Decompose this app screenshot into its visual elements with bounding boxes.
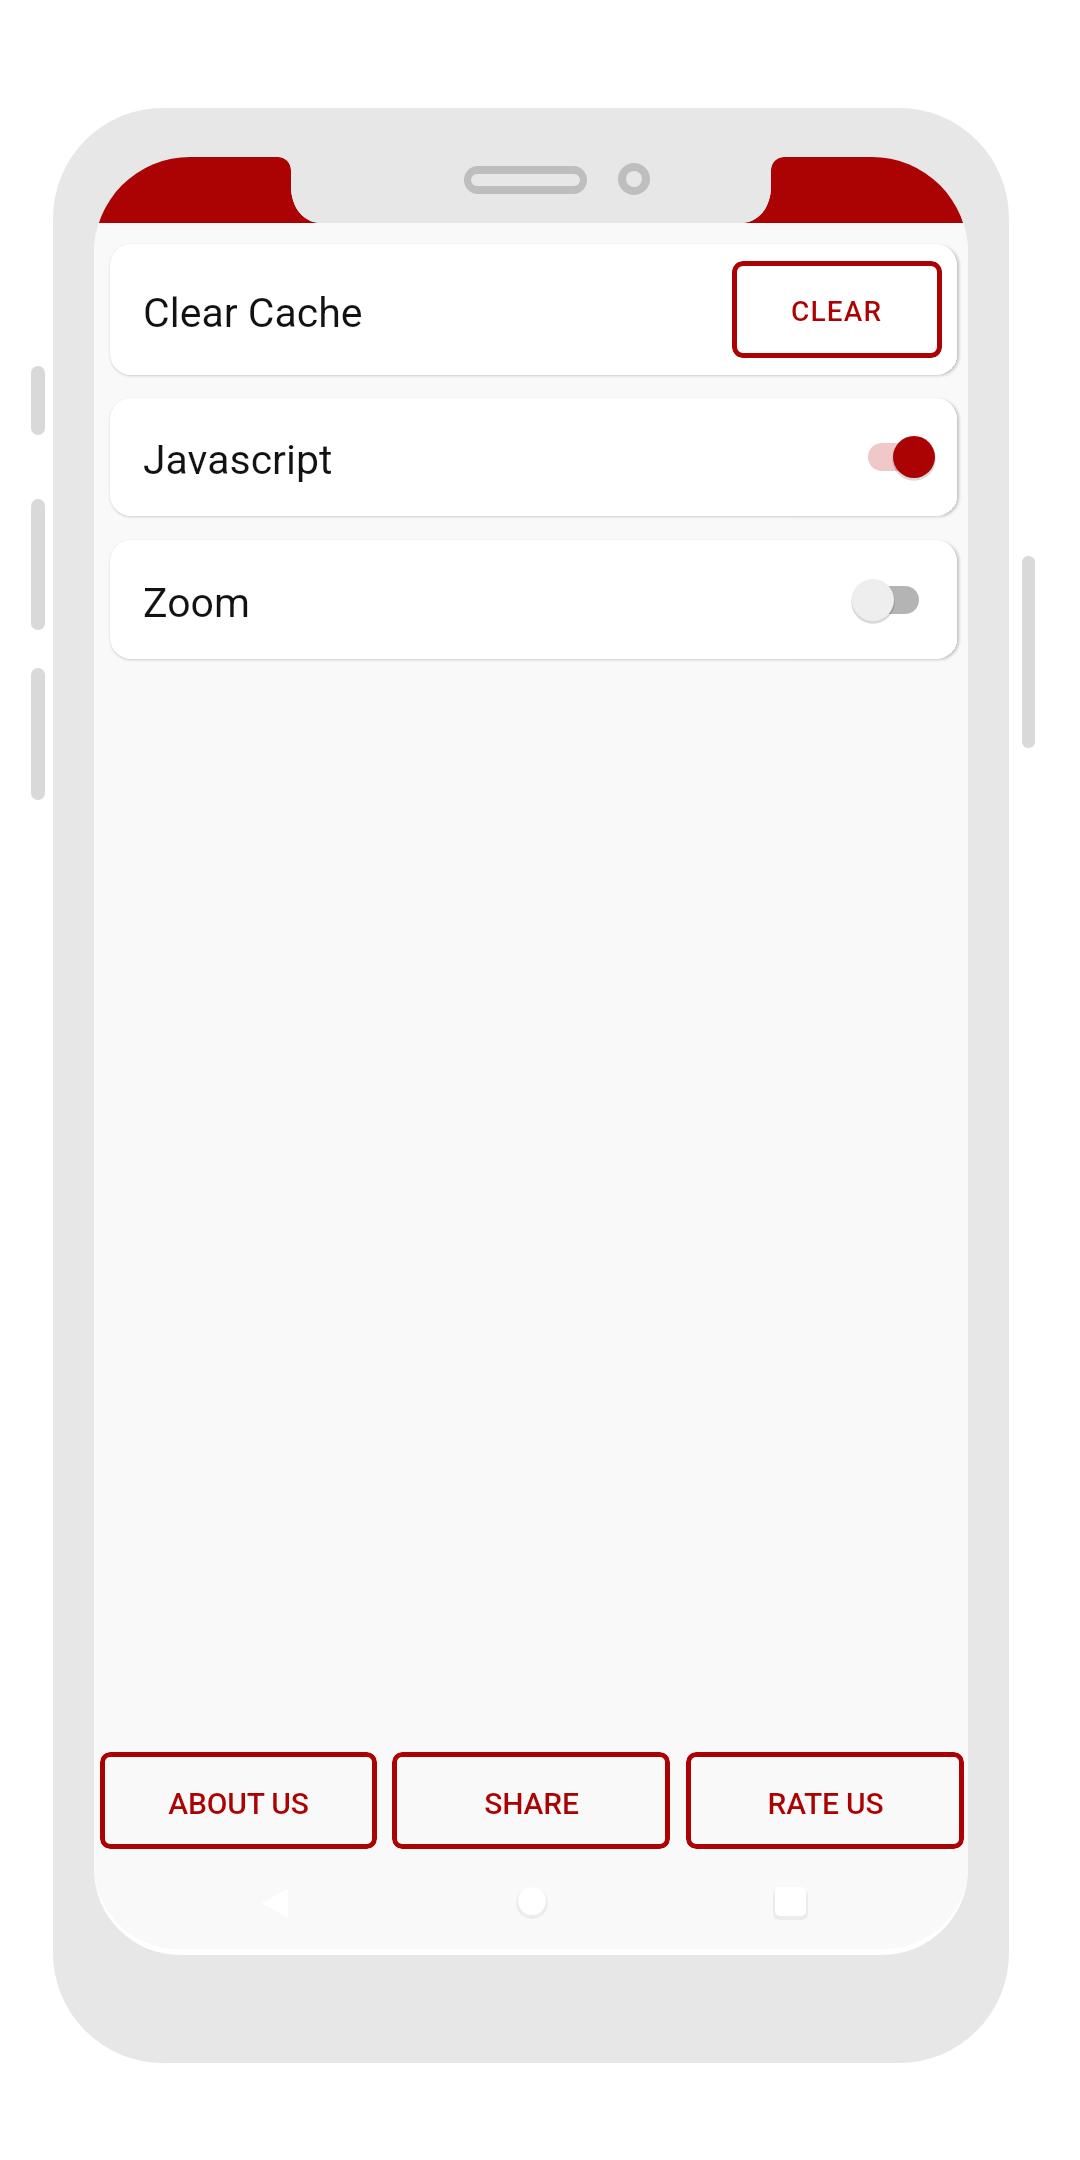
button[interactable]: Switch on — [856, 427, 942, 487]
button[interactable]: Switch off — [856, 570, 942, 630]
staticText: SHARE — [484, 1786, 579, 1821]
button[interactable]: Clear Cache — [110, 244, 957, 375]
button[interactable]: ABOUT US — [100, 1752, 377, 1849]
staticText: Javascript — [143, 436, 333, 484]
button[interactable]: Zoom — [110, 540, 957, 659]
staticText: ABOUT US — [168, 1786, 309, 1821]
button[interactable]: Javascript — [110, 398, 957, 516]
button[interactable]: CLEAR — [732, 261, 942, 358]
staticText: RATE US — [767, 1786, 884, 1821]
staticText: Zoom — [143, 579, 250, 627]
button[interactable]: RATE US — [686, 1752, 964, 1849]
staticText: Clear Cache — [143, 289, 363, 337]
staticText: CLEAR — [791, 295, 883, 328]
button[interactable]: SHARE — [392, 1752, 670, 1849]
